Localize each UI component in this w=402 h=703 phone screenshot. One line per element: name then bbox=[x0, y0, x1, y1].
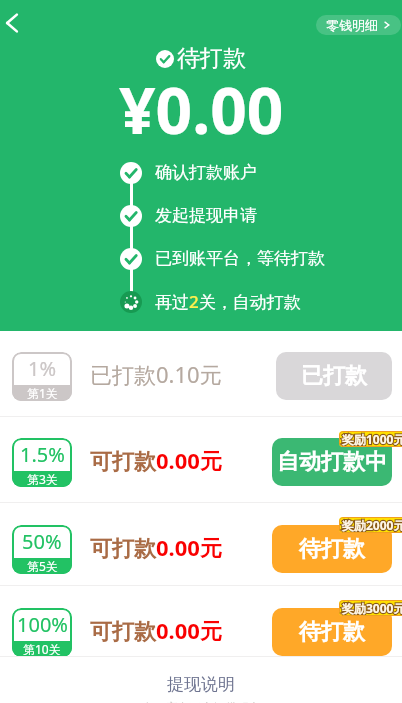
button[interactable]: 100% bbox=[0, 586, 402, 656]
button[interactable]: 50% bbox=[0, 503, 402, 585]
staticText: 确认打款账户 bbox=[155, 162, 257, 183]
button[interactable]: 待打款 bbox=[272, 608, 392, 656]
staticText: 待打款 bbox=[299, 535, 365, 563]
staticText: 已打款 bbox=[301, 362, 367, 390]
staticText: ¥0.00 bbox=[119, 66, 284, 153]
button[interactable]: 零钱明细 bbox=[316, 15, 401, 35]
staticText: 自动打款中 bbox=[277, 448, 387, 476]
button[interactable]: 1% bbox=[0, 331, 402, 416]
staticText: 发起提现申请 bbox=[155, 205, 257, 226]
staticText: 第1关 bbox=[27, 385, 58, 401]
staticText: 奖励2000元 bbox=[342, 517, 402, 533]
staticText: 待打款 bbox=[299, 618, 365, 646]
staticText: 1.5% bbox=[20, 441, 65, 468]
button[interactable]: 自动打款中 bbox=[272, 438, 392, 486]
staticText: 小程序由平台提供服务 bbox=[141, 700, 261, 703]
staticText: 奖励3000元 bbox=[342, 600, 402, 616]
staticText: 第10关 bbox=[23, 641, 61, 657]
staticText: 奖励3000元 bbox=[342, 600, 402, 616]
staticText: 待打款 bbox=[177, 44, 246, 73]
staticText: 奖励1000元 bbox=[342, 431, 402, 447]
staticText: 可打款0.00元 bbox=[90, 615, 222, 645]
staticText: 第5关 bbox=[27, 558, 58, 574]
button[interactable]: Back bbox=[0, 5, 30, 41]
button[interactable]: 已打款 bbox=[276, 352, 392, 400]
staticText: 已打款0.10元 bbox=[90, 359, 222, 389]
staticText: 提现说明 bbox=[167, 674, 235, 695]
staticText: 奖励2000元 bbox=[342, 517, 402, 533]
button[interactable]: 待打款 bbox=[272, 525, 392, 573]
button[interactable]: 1.5% bbox=[0, 417, 402, 502]
staticText: 第3关 bbox=[27, 471, 58, 487]
staticText: 可打款0.00元 bbox=[90, 532, 222, 562]
staticText: 1% bbox=[28, 355, 57, 382]
staticText: 奖励1000元 bbox=[342, 431, 402, 447]
staticText: 可打款0.00元 bbox=[90, 445, 222, 475]
staticText: 100% bbox=[17, 611, 68, 638]
staticText: 已到账平台，等待打款 bbox=[155, 248, 325, 269]
staticText: 零钱明细 bbox=[326, 17, 378, 33]
staticText: 50% bbox=[22, 528, 62, 555]
staticText: 再过2关，自动打款 bbox=[155, 290, 301, 313]
